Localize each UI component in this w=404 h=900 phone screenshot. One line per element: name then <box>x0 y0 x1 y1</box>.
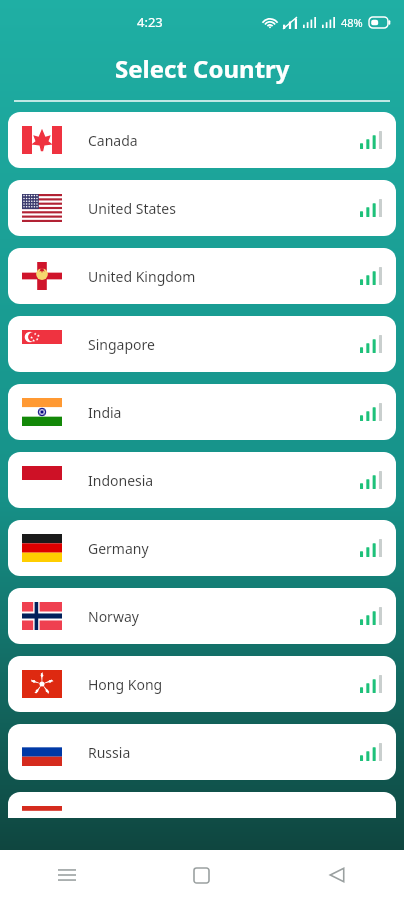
button[interactable]: United Kingdom <box>8 248 396 304</box>
staticText: Germany <box>88 539 360 558</box>
staticText: Russia <box>88 743 360 762</box>
staticText: Indonesia <box>88 471 360 490</box>
other: Signal strength <box>360 199 382 217</box>
staticText: 4:23 <box>137 13 163 31</box>
button[interactable]: Home <box>134 850 269 900</box>
other: Signal strength <box>360 743 382 761</box>
staticText: Norway <box>88 607 360 626</box>
staticText: 48% <box>341 15 363 30</box>
button[interactable]: Recent apps <box>0 850 134 900</box>
other: Signal strength <box>360 607 382 625</box>
other: Signal strength <box>360 267 382 285</box>
button[interactable] <box>8 792 396 818</box>
button[interactable]: Hong Kong <box>8 656 396 712</box>
other: Signal strength <box>360 403 382 421</box>
staticText: United States <box>88 199 360 218</box>
staticText: Singapore <box>88 335 360 354</box>
other: Signal strength <box>360 131 382 149</box>
other: Signal strength <box>360 539 382 557</box>
button[interactable]: Russia <box>8 724 396 780</box>
staticText: United Kingdom <box>88 267 360 286</box>
other: Signal strength <box>360 335 382 353</box>
button[interactable]: India <box>8 384 396 440</box>
button[interactable]: Canada <box>8 112 396 168</box>
staticText: Select Country <box>115 52 290 85</box>
button[interactable]: Indonesia <box>8 452 396 508</box>
staticText: India <box>88 403 360 422</box>
other: Signal strength <box>360 675 382 693</box>
button[interactable]: Germany <box>8 520 396 576</box>
button[interactable]: Singapore <box>8 316 396 372</box>
button[interactable]: United States <box>8 180 396 236</box>
other: Signal strength <box>360 471 382 489</box>
button[interactable]: Norway <box>8 588 396 644</box>
staticText: Hong Kong <box>88 675 360 694</box>
staticText: Canada <box>88 131 360 150</box>
button[interactable]: Back <box>269 850 404 900</box>
